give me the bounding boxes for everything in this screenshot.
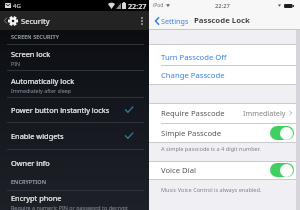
staticText: Require Passcode [161,108,225,118]
staticText: Automatically lock [11,76,75,86]
button[interactable]: Require Passcode [149,103,300,123]
staticText: Power button instantly locks [11,105,110,115]
button[interactable]: Encrypt phone [0,191,149,210]
staticText: iPod [153,2,164,9]
staticText: Music Voice Control is always enabled. [161,186,262,194]
staticText: Screen lock [11,49,51,59]
staticText: Passcode Lock [194,15,250,26]
staticText: Owner info [11,158,50,168]
staticText: Encrypt phone [11,193,62,203]
staticText: Simple Passcode [161,128,222,138]
staticText: Immediately after sleep [11,87,72,94]
staticText: Voice Dial [161,165,197,175]
staticText: Settings [161,16,189,26]
button[interactable]: Enable widgets [0,127,149,145]
staticText: Change Passcode [161,70,225,80]
button[interactable]: Change Passcode [149,65,300,85]
staticText: PIN [11,60,21,67]
staticText: Security [21,16,50,26]
staticText: SCREEN SECURITY [11,33,59,40]
button[interactable]: Automatically lock [0,74,149,94]
staticText: Turn Passcode Off [161,52,227,62]
staticText: Immediately [243,108,286,118]
button[interactable]: Settings [149,14,190,28]
button[interactable]: Simple Passcode [149,124,300,142]
staticText: ENCRYPTION [11,178,46,185]
staticText: Require a numeric PIN or password to dec… [11,204,128,210]
staticText: 4G [13,2,21,10]
button[interactable]: Voice Dial [149,161,300,179]
button[interactable]: Turn Passcode Off [149,47,300,67]
button[interactable]: Screen lock [0,47,149,67]
staticText: 22:27 [128,1,147,11]
staticText: 22:27 [215,2,230,10]
button[interactable]: Security [0,11,149,30]
button[interactable]: Power button instantly locks [0,101,149,119]
button[interactable]: More options [135,11,149,30]
staticText: Enable widgets [11,131,64,141]
staticText: A simple passcode is a 4 digit number. [161,145,261,153]
button[interactable]: Owner info [0,154,149,172]
